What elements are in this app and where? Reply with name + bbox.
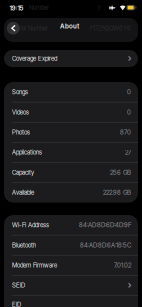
staticText: 27: [125, 149, 131, 156]
staticText: Available: [12, 189, 34, 196]
staticText: SEID: [12, 282, 25, 289]
staticText: 84:AD:8D:6A:18:5C: [80, 241, 131, 249]
staticText: Bluetooth: [12, 241, 36, 249]
staticText: Coverage Expired: [12, 55, 57, 62]
staticText: 0: [127, 108, 131, 116]
staticText: Videos: [12, 108, 29, 116]
staticText: Wi-Fi Address: [12, 221, 49, 229]
staticText: Serial Number: [12, 24, 48, 32]
staticText: 7.01.02: [114, 261, 131, 269]
staticText: Model Number: [12, 4, 49, 11]
staticText: 870: [120, 128, 131, 136]
staticText: Modem Firmware: [12, 261, 57, 269]
staticText: EID: [12, 301, 21, 307]
staticText: 19:15: [9, 4, 23, 12]
staticText: MU663LL/A: [98, 4, 131, 11]
staticText: About: [60, 22, 79, 30]
staticText: 0: [127, 88, 131, 96]
staticText: F17ZN2QW6Y6: [90, 24, 131, 32]
staticText: 256 GB: [110, 169, 131, 176]
staticText: Applications: [12, 149, 42, 156]
staticText: Photos: [12, 128, 30, 136]
staticText: Capacity: [12, 169, 34, 176]
staticText: 222.98 GB: [103, 189, 131, 196]
staticText: Songs: [12, 88, 28, 96]
staticText: 84:AD:8D:6D:4D:9F: [79, 221, 131, 229]
